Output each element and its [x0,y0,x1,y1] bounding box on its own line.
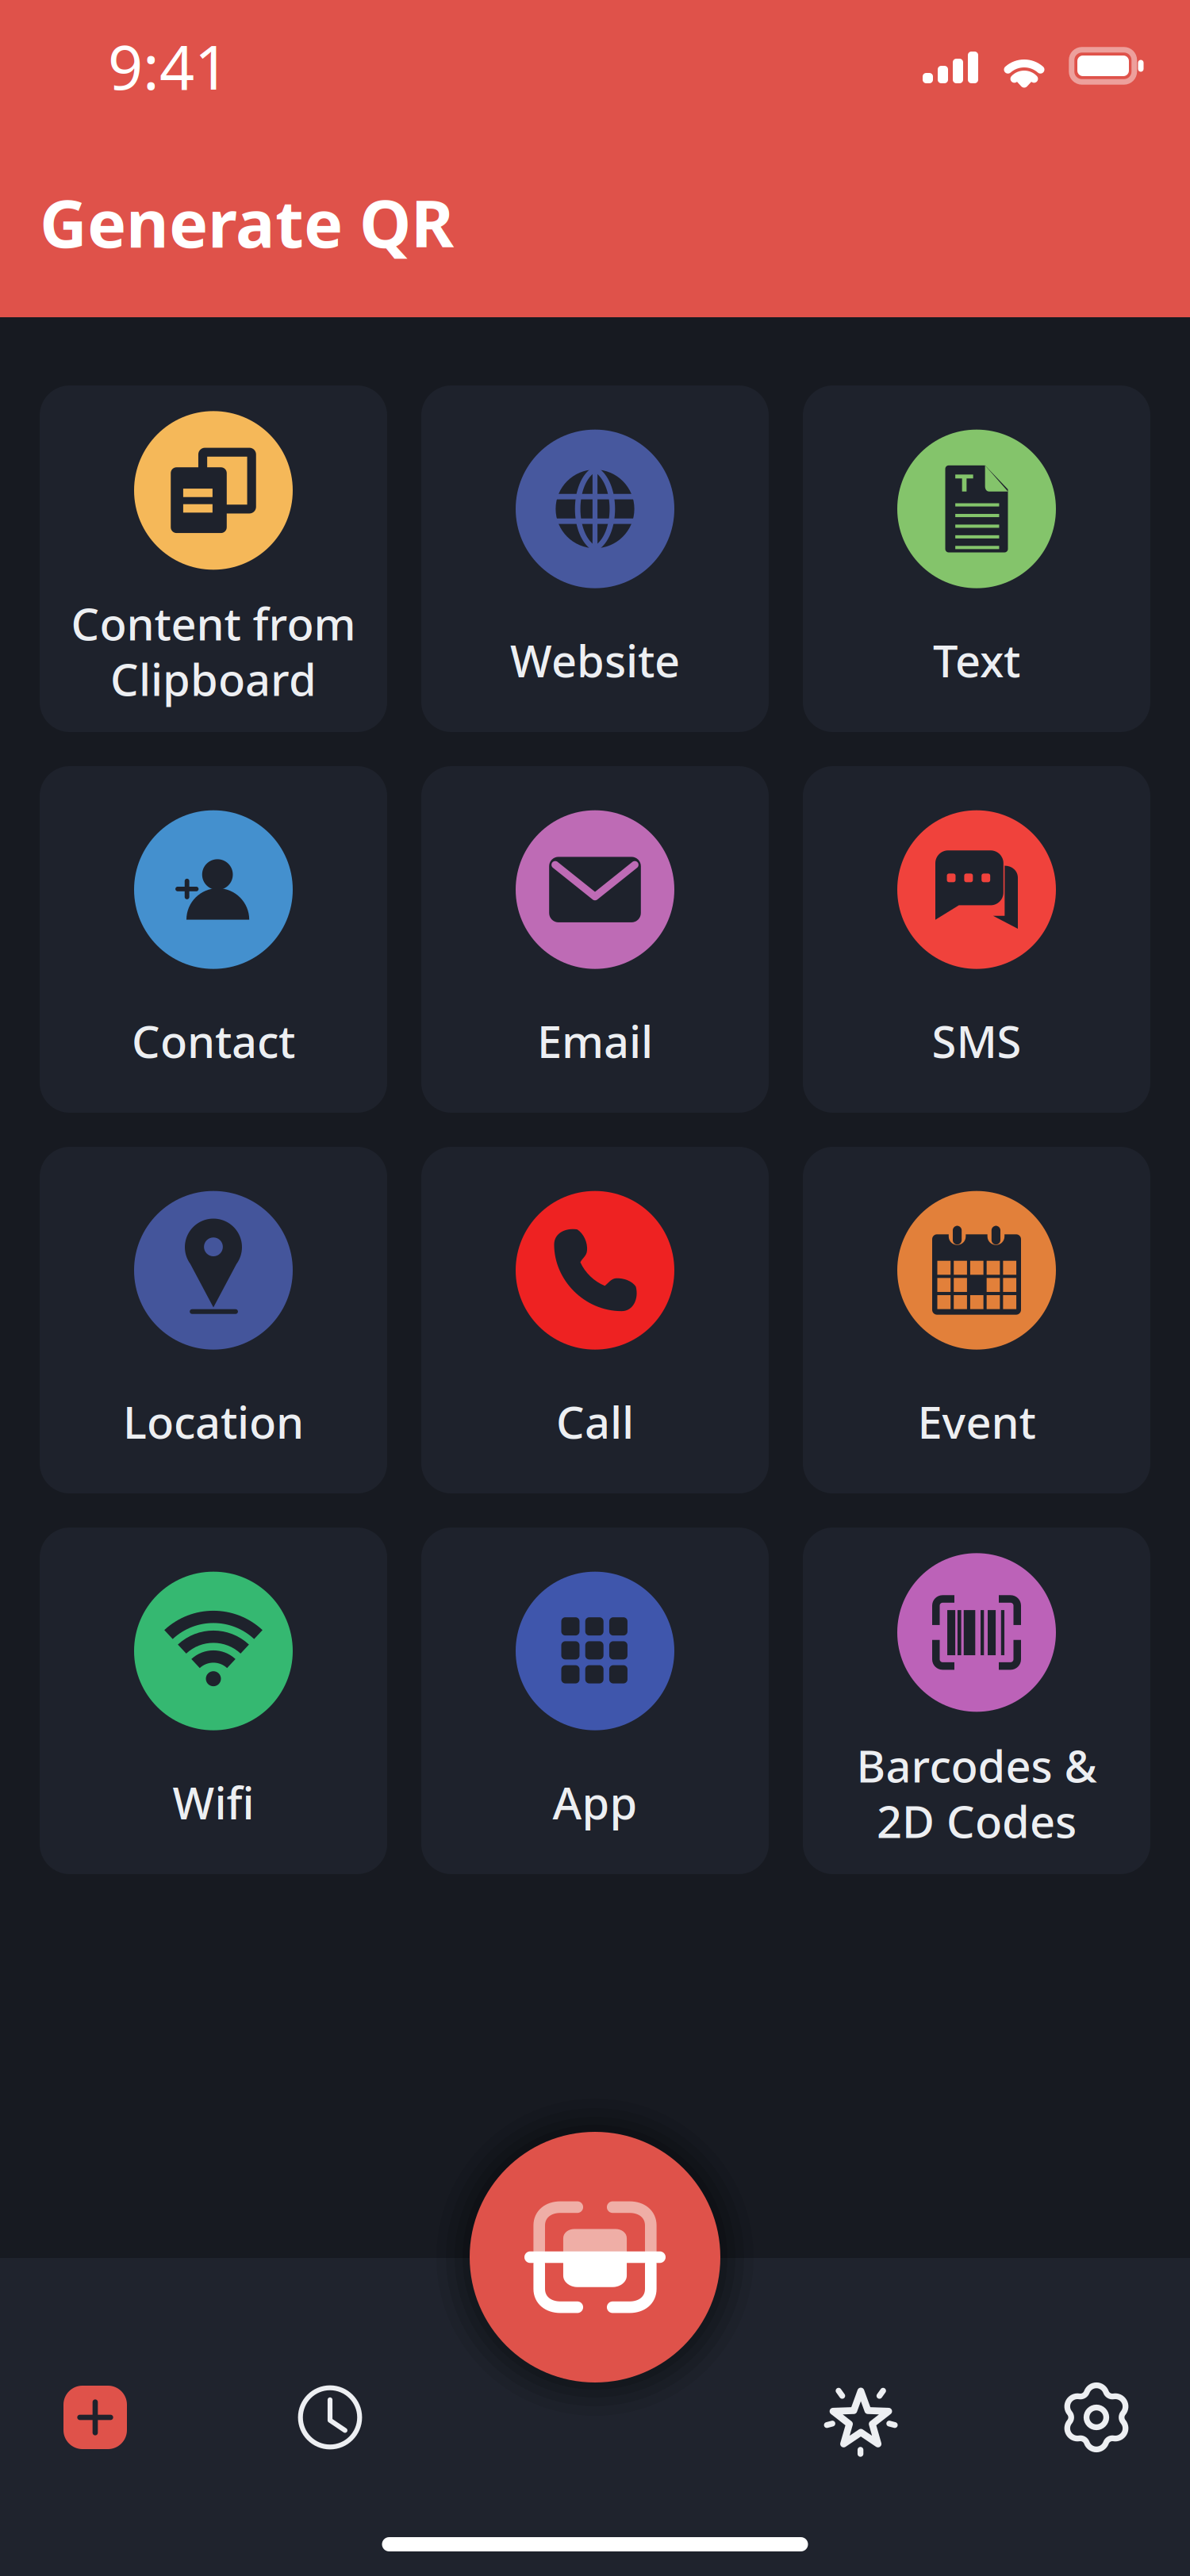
button[interactable]: Create [0,2376,190,2459]
staticText: 2D Codes [877,1791,1077,1850]
staticText: Content from [71,594,356,653]
button[interactable]: SMS [803,766,1150,1113]
button[interactable]: Content from [40,385,387,732]
staticText: 9:41 [108,25,229,107]
button[interactable]: Wifi [40,1528,387,1874]
button[interactable]: Settings [1003,2376,1190,2459]
button[interactable]: Favorites [720,2376,1003,2459]
staticText: Contact [132,1011,295,1070]
button[interactable]: Location [40,1147,387,1493]
staticText: App [553,1773,637,1832]
staticText: Barcodes & [856,1736,1097,1795]
button[interactable]: Event [803,1147,1150,1493]
staticText: Generate QR [40,179,454,266]
staticText: Event [917,1392,1036,1451]
staticText: Text [933,631,1020,690]
button[interactable]: Contact [40,766,387,1113]
staticText: Email [537,1011,653,1070]
button[interactable]: Call [421,1147,769,1493]
staticText: Clipboard [110,649,317,708]
staticText: Wifi [173,1773,254,1832]
staticText: Website [510,631,680,690]
button[interactable]: Website [421,385,769,732]
button[interactable]: Email [421,766,769,1113]
staticText: SMS [932,1011,1021,1070]
staticText: Call [556,1392,634,1451]
button[interactable]: Barcodes & [803,1528,1150,1874]
staticText: Location [123,1392,304,1451]
button[interactable]: Scan code [436,2099,754,2416]
button[interactable]: Text [803,385,1150,732]
button[interactable]: History [190,2376,470,2459]
button[interactable]: App [421,1528,769,1874]
